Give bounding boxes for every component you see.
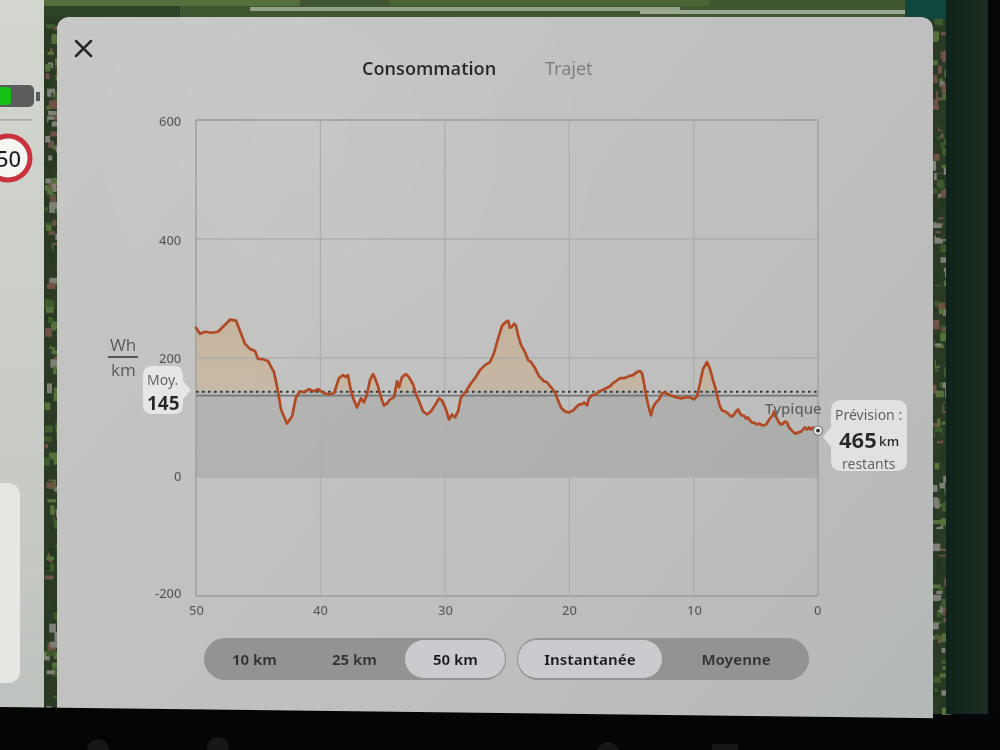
- button[interactable]: Trajet: [535, 50, 603, 87]
- button[interactable]: Moyenne: [663, 638, 809, 680]
- staticText: Moyenne: [701, 649, 771, 669]
- button[interactable]: Instantanée: [517, 638, 663, 680]
- staticText: 600: [159, 112, 182, 130]
- staticText: Wh: [110, 333, 137, 356]
- staticText: Prévision :: [835, 405, 903, 424]
- staticText: 0: [174, 467, 182, 485]
- staticText: 50: [189, 601, 204, 619]
- button[interactable]: Consommation: [352, 50, 507, 87]
- staticText: -200: [155, 584, 182, 602]
- staticText: 50: [0, 143, 22, 173]
- staticText: Consommation: [362, 56, 497, 81]
- button[interactable]: 25 km: [304, 638, 404, 680]
- staticText: Instantanée: [544, 649, 636, 669]
- staticText: 25 km: [332, 649, 377, 669]
- staticText: 0: [814, 601, 822, 619]
- staticText: restants: [842, 454, 896, 471]
- staticText: 200: [159, 349, 182, 367]
- staticText: 465: [839, 424, 877, 454]
- button[interactable]: 10 km: [204, 638, 304, 680]
- staticText: 50 km: [433, 649, 478, 669]
- staticText: Moy.: [147, 370, 179, 389]
- staticText: km: [111, 358, 136, 381]
- staticText: 10 km: [232, 649, 277, 669]
- button[interactable]: Fermer: [65, 30, 102, 67]
- staticText: 145: [147, 390, 180, 414]
- staticText: 400: [159, 231, 182, 249]
- staticText: 10: [687, 601, 702, 619]
- staticText: 30: [438, 601, 453, 619]
- staticText: 40: [313, 601, 328, 619]
- staticText: Trajet: [545, 56, 593, 81]
- staticText: Typique: [765, 398, 822, 418]
- staticText: km: [879, 432, 900, 450]
- button[interactable]: 50 km: [404, 638, 506, 680]
- staticText: 20: [562, 601, 577, 619]
